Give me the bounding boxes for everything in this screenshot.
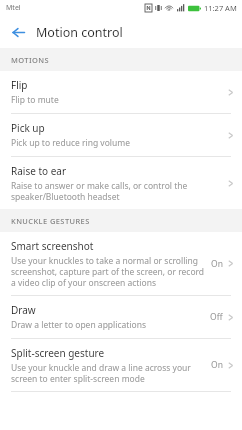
staticText: Split-screen gesture: [11, 346, 105, 360]
button[interactable]: Flip: [0, 71, 242, 113]
staticText: Use your knuckles to take a normal or sc…: [11, 255, 205, 288]
staticText: On: [211, 359, 223, 371]
staticText: MOTIONS: [11, 55, 50, 65]
button[interactable]: Back: [0, 16, 36, 48]
staticText: Flip: [11, 78, 28, 92]
staticText: Use your knuckle and draw a line across …: [11, 362, 205, 384]
staticText: On: [211, 258, 223, 270]
staticText: KNUCKLE GESTURES: [11, 216, 90, 226]
staticText: Off: [210, 311, 223, 323]
staticText: Draw: [11, 303, 36, 317]
button[interactable]: Split-screen gesture: [0, 339, 242, 391]
staticText: Pick up: [11, 121, 45, 135]
staticText: Draw a letter to open applications: [11, 319, 147, 331]
staticText: Motion control: [36, 24, 123, 41]
button[interactable]: Draw: [0, 296, 242, 338]
staticText: 11:27 AM: [204, 3, 237, 13]
staticText: Pick up to reduce ring volume: [11, 137, 131, 149]
button[interactable]: Smart screenshot: [0, 232, 242, 295]
button[interactable]: Pick up: [0, 114, 242, 156]
staticText: Raise to ear: [11, 164, 67, 178]
staticText: Flip to mute: [11, 94, 59, 106]
staticText: Smart screenshot: [11, 239, 94, 253]
staticText: Mtel: [6, 3, 21, 13]
button[interactable]: Raise to ear: [0, 157, 242, 209]
staticText: Raise to answer or make calls, or contro…: [11, 180, 221, 202]
